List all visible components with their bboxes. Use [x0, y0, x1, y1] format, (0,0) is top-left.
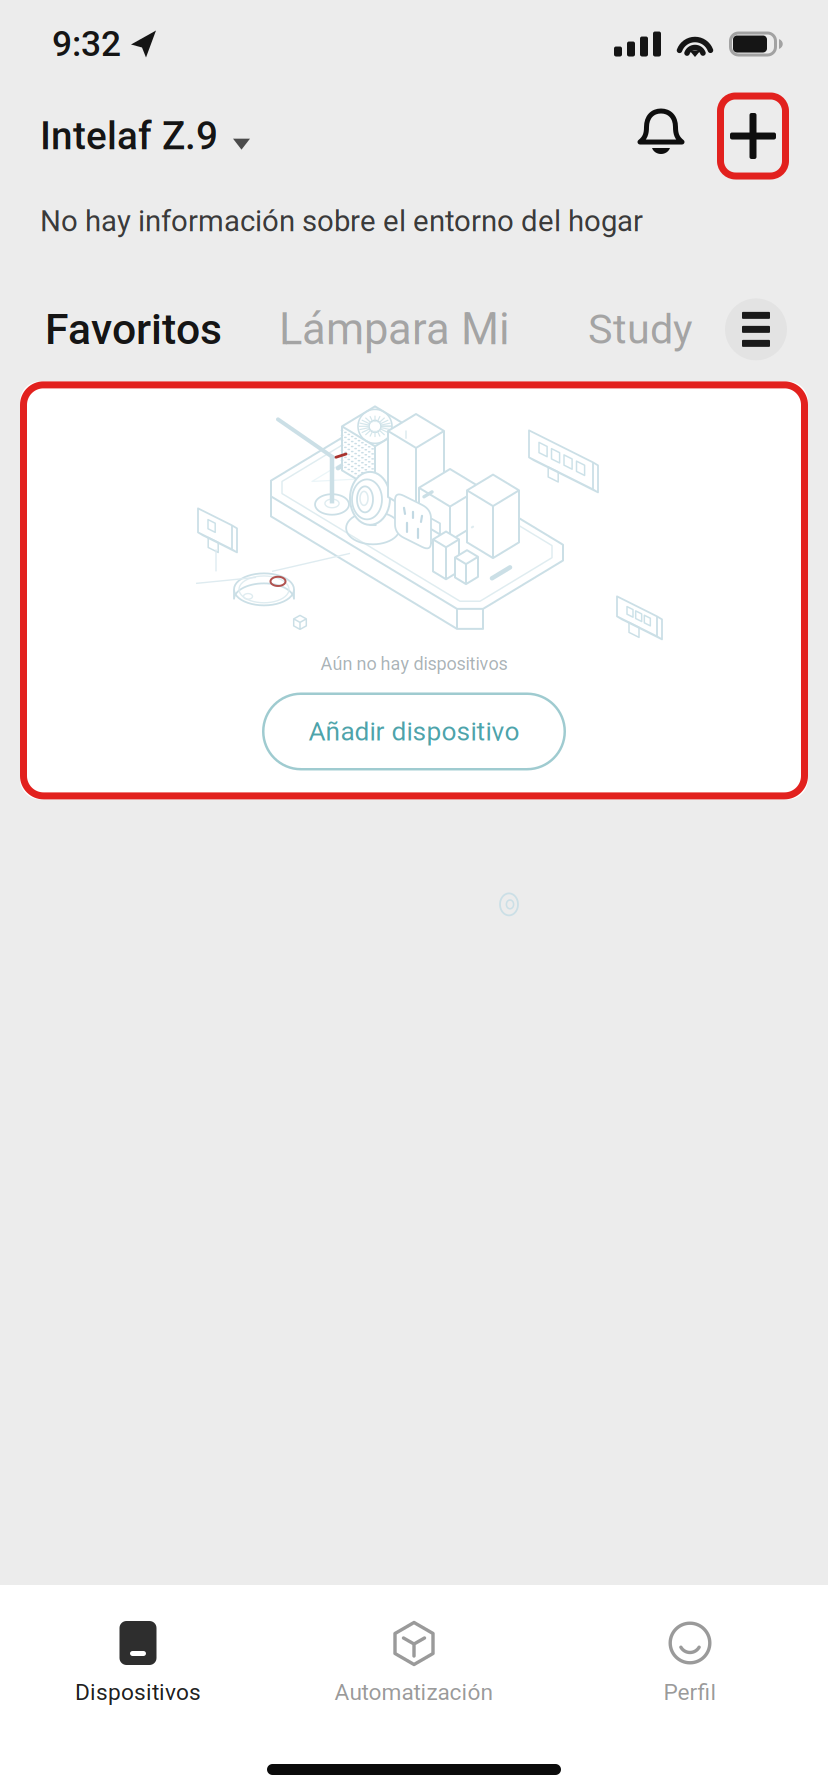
- staticText: 9:32: [52, 23, 121, 65]
- staticText: Añadir dispositivo: [308, 716, 519, 747]
- staticText: Favoritos: [45, 304, 222, 354]
- staticText: Intelaf Z.9: [40, 113, 218, 159]
- button[interactable]: Dispositivos: [0, 1621, 276, 1706]
- staticText: No hay información sobre el entorno del …: [40, 204, 643, 238]
- button[interactable]: Añadir dispositivo: [262, 692, 566, 770]
- button[interactable]: Intelaf Z.9: [40, 113, 250, 159]
- button[interactable]: Favoritos: [45, 304, 222, 354]
- staticText: Lámpara Mi: [279, 304, 510, 355]
- staticText: Aún no hay dispositivos: [320, 653, 507, 674]
- button[interactable]: Perfil: [552, 1621, 828, 1706]
- button[interactable]: Notifications: [633, 103, 691, 169]
- staticText: Study: [588, 305, 693, 354]
- button[interactable]: Study: [588, 305, 693, 354]
- button[interactable]: Automatización: [276, 1621, 552, 1706]
- staticText: Automatización: [334, 1679, 493, 1706]
- button[interactable]: Add device: [717, 92, 789, 179]
- staticText: Perfil: [663, 1679, 716, 1706]
- button[interactable]: Lámpara Mi: [279, 304, 510, 355]
- staticText: Dispositivos: [75, 1679, 201, 1706]
- button[interactable]: Room list: [725, 298, 787, 360]
